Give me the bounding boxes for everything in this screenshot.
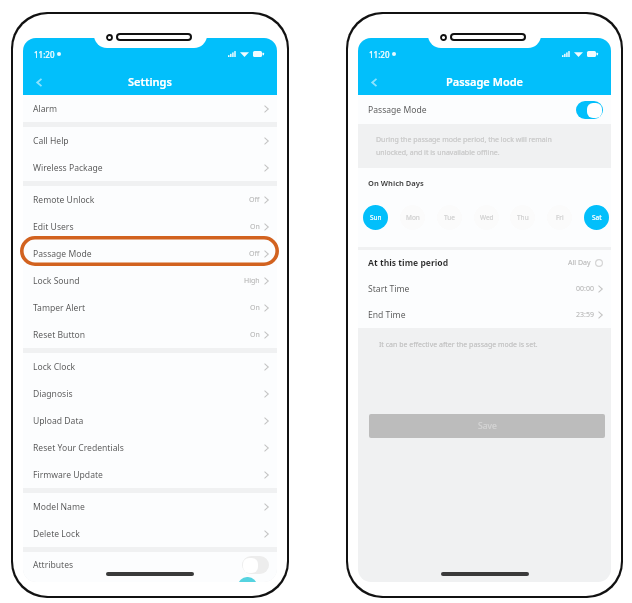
button[interactable]: Mon: [400, 205, 425, 230]
staticText: Call Help: [33, 135, 69, 147]
staticText: Firmware Update: [33, 469, 103, 481]
staticText: Sat: [592, 213, 602, 222]
staticText: Remote Unlock: [33, 194, 95, 206]
staticText: Wed: [480, 213, 494, 222]
button[interactable]: Tamper Alert: [23, 294, 277, 321]
staticText: 23:59: [576, 310, 594, 320]
button[interactable]: Back: [365, 73, 383, 91]
button[interactable]: End Time: [358, 302, 611, 328]
staticText: Fri: [556, 213, 564, 222]
staticText: Upload Data: [33, 415, 84, 427]
button[interactable]: Passage Mode: [358, 95, 611, 124]
staticText: Lock Sound: [33, 275, 80, 287]
staticText: Sun: [370, 213, 382, 222]
button[interactable]: Reset Button: [23, 321, 277, 348]
staticText: Attributes: [33, 559, 74, 571]
staticText: Start Time: [368, 283, 410, 295]
button[interactable]: Upload Data: [23, 407, 277, 434]
staticText: Delete Lock: [33, 528, 80, 540]
button[interactable]: Delete Lock: [23, 520, 277, 547]
staticText: Passage Mode: [368, 104, 427, 116]
button[interactable]: Start Time: [358, 276, 611, 302]
button[interactable]: Firmware Update: [23, 461, 277, 488]
staticText: Passage Mode: [446, 74, 523, 89]
staticText: Passage Mode: [33, 248, 92, 260]
button[interactable]: Fri: [547, 205, 572, 230]
button[interactable]: Back: [30, 73, 48, 91]
staticText: High: [244, 276, 260, 286]
staticText: Lock Clock: [33, 361, 76, 373]
staticText: On Which Days: [368, 178, 424, 188]
button[interactable]: Attributes: [23, 552, 277, 577]
staticText: Off: [249, 249, 260, 259]
button[interactable]: Model Name: [23, 493, 277, 520]
button[interactable]: Wireless Package: [23, 154, 277, 181]
button[interactable]: Lock Sound: [23, 267, 277, 294]
button[interactable]: Reset Your Credentials: [23, 434, 277, 461]
staticText: During the passage mode period, the lock…: [376, 135, 575, 157]
button[interactable]: At this time period: [358, 250, 611, 276]
staticText: Thu: [517, 213, 529, 222]
button[interactable]: Toggle: [576, 101, 603, 119]
button[interactable]: Tue: [437, 205, 462, 230]
staticText: It can be effective after the passage mo…: [379, 340, 538, 350]
staticText: Diagnosis: [33, 388, 73, 400]
staticText: On: [250, 303, 260, 313]
staticText: Off: [249, 195, 260, 205]
staticText: Edit Users: [33, 221, 74, 233]
staticText: Settings: [128, 74, 172, 89]
staticText: Alarm: [33, 103, 58, 115]
button[interactable]: Wed: [474, 205, 499, 230]
staticText: Reset Button: [33, 329, 86, 341]
staticText: Tamper Alert: [33, 302, 86, 314]
button[interactable]: Passage Mode: [23, 240, 277, 267]
staticText: On: [250, 222, 260, 232]
staticText: End Time: [368, 309, 406, 321]
staticText: Model Name: [33, 501, 85, 513]
staticText: 11:20: [369, 49, 390, 60]
staticText: Tue: [444, 213, 455, 222]
button[interactable]: Alarm: [23, 95, 277, 122]
button[interactable]: Lock Clock: [23, 353, 277, 380]
button[interactable]: Remote Unlock: [23, 186, 277, 213]
staticText: At this time period: [368, 257, 449, 269]
button[interactable]: Call Help: [23, 127, 277, 154]
button[interactable]: Sat: [584, 205, 609, 230]
staticText: Mon: [406, 213, 420, 222]
button[interactable]: Sun: [363, 205, 388, 230]
staticText: All Day: [568, 258, 591, 268]
button[interactable]: Thu: [510, 205, 535, 230]
button[interactable]: Diagnosis: [23, 380, 277, 407]
staticText: Wireless Package: [33, 162, 103, 174]
staticText: Save: [478, 420, 497, 432]
staticText: Reset Your Credentials: [33, 442, 124, 454]
staticText: 11:20: [34, 49, 55, 60]
staticText: 00:00: [576, 284, 594, 294]
button[interactable]: Edit Users: [23, 213, 277, 240]
staticText: On: [250, 330, 260, 340]
button[interactable]: Toggle: [242, 556, 269, 574]
